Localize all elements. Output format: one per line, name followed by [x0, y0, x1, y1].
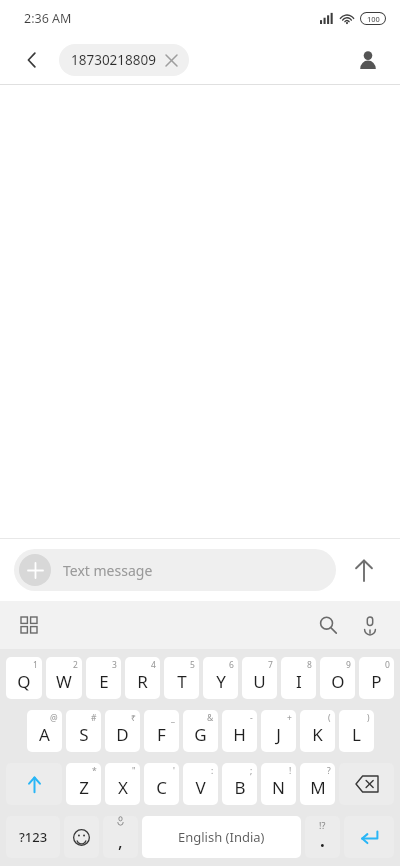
button[interactable]: Add attachment [14, 549, 336, 591]
staticText: W [56, 670, 72, 693]
staticText: Text message [63, 561, 153, 580]
staticText: # [91, 712, 97, 724]
button[interactable]: 6 [203, 657, 238, 699]
staticText: S [79, 723, 89, 746]
staticText: : [211, 765, 214, 777]
staticText: G [194, 723, 207, 746]
staticText: 100 [367, 14, 380, 24]
button[interactable]: Backspace [339, 763, 394, 805]
button[interactable]: !? [305, 816, 340, 858]
button[interactable]: Send [344, 550, 384, 590]
button[interactable]: Shift [6, 763, 62, 805]
button[interactable]: 5 [164, 657, 199, 699]
button[interactable]: 3 [86, 657, 121, 699]
staticText: N [272, 776, 285, 799]
staticText: P [371, 670, 382, 693]
staticText: 1 [33, 659, 38, 671]
button[interactable]: Keyboard menu [14, 610, 44, 640]
staticText: U [253, 670, 266, 693]
button[interactable]: 7 [242, 657, 277, 699]
button[interactable]: ' [144, 763, 179, 805]
staticText: I [296, 670, 302, 693]
button[interactable]: ? [300, 763, 335, 805]
staticText: !? [319, 819, 326, 831]
staticText: 8 [307, 659, 312, 671]
staticText: K [312, 723, 323, 746]
button[interactable]: " [105, 763, 140, 805]
button[interactable]: 2 [46, 657, 82, 699]
button[interactable]: ; [222, 763, 257, 805]
staticText: " [132, 765, 136, 777]
staticText: 4 [151, 659, 156, 671]
staticText: Q [17, 670, 31, 693]
staticText: V [195, 776, 206, 799]
button[interactable]: , [103, 816, 138, 858]
staticText: @ [50, 712, 58, 724]
staticText: 2:36 AM [24, 10, 72, 27]
staticText: . [320, 829, 325, 852]
button[interactable]: ?123 [6, 816, 60, 858]
button[interactable]: _ [144, 710, 179, 752]
button[interactable]: Add attachment [19, 554, 51, 586]
button[interactable]: 0 [359, 657, 394, 699]
staticText: * [92, 765, 97, 777]
staticText: B [234, 776, 246, 799]
button[interactable]: Voice input [354, 609, 386, 641]
staticText: & [207, 712, 214, 724]
staticText: R [137, 670, 148, 693]
staticText: J [276, 723, 281, 746]
staticText: ? [327, 765, 331, 777]
button[interactable]: * [66, 763, 101, 805]
staticText: 9 [346, 659, 351, 671]
staticText: ! [289, 765, 292, 777]
button[interactable]: 9 [320, 657, 355, 699]
button[interactable]: ₹ [105, 710, 140, 752]
staticText: - [250, 712, 253, 724]
staticText: M [310, 776, 326, 799]
button[interactable]: + [261, 710, 296, 752]
button[interactable]: ) [339, 710, 374, 752]
button[interactable]: : [183, 763, 218, 805]
staticText: ; [250, 765, 253, 777]
button[interactable]: Enter [344, 816, 394, 858]
staticText: 3 [112, 659, 117, 671]
button[interactable]: ( [300, 710, 335, 752]
button[interactable]: # [66, 710, 101, 752]
button[interactable]: @ [27, 710, 62, 752]
staticText: L [352, 723, 361, 746]
staticText: 6 [229, 659, 234, 671]
staticText: T [177, 670, 187, 693]
button[interactable]: English (India) [142, 816, 301, 858]
staticText: C [156, 776, 167, 799]
staticText: 18730218809 [71, 51, 156, 69]
staticText: O [331, 670, 345, 693]
button[interactable]: ! [261, 763, 296, 805]
staticText: E [99, 670, 109, 693]
staticText: D [116, 723, 129, 746]
staticText: F [157, 723, 166, 746]
staticText: 7 [268, 659, 273, 671]
staticText: _ [171, 712, 175, 724]
button[interactable]: Emoji [64, 816, 99, 858]
button[interactable]: Contact [350, 42, 386, 78]
staticText: ' [173, 765, 175, 777]
staticText: ?123 [19, 828, 48, 846]
staticText: Z [79, 776, 89, 799]
staticText: , [118, 830, 123, 853]
staticText: 5 [190, 659, 195, 671]
button[interactable]: - [222, 710, 257, 752]
button[interactable]: & [183, 710, 218, 752]
button[interactable]: 8 [281, 657, 316, 699]
staticText: H [233, 723, 246, 746]
staticText: A [39, 723, 50, 746]
staticText: ₹ [131, 712, 136, 724]
staticText: 2 [73, 659, 78, 671]
staticText: Y [216, 670, 226, 693]
button[interactable]: 18730218809 [59, 44, 189, 76]
button[interactable]: 4 [125, 657, 160, 699]
staticText: ) [367, 712, 370, 724]
button[interactable]: Back [14, 42, 50, 78]
staticText: ( [328, 712, 331, 724]
button[interactable]: Search [312, 609, 344, 641]
button[interactable]: 1 [6, 657, 42, 699]
